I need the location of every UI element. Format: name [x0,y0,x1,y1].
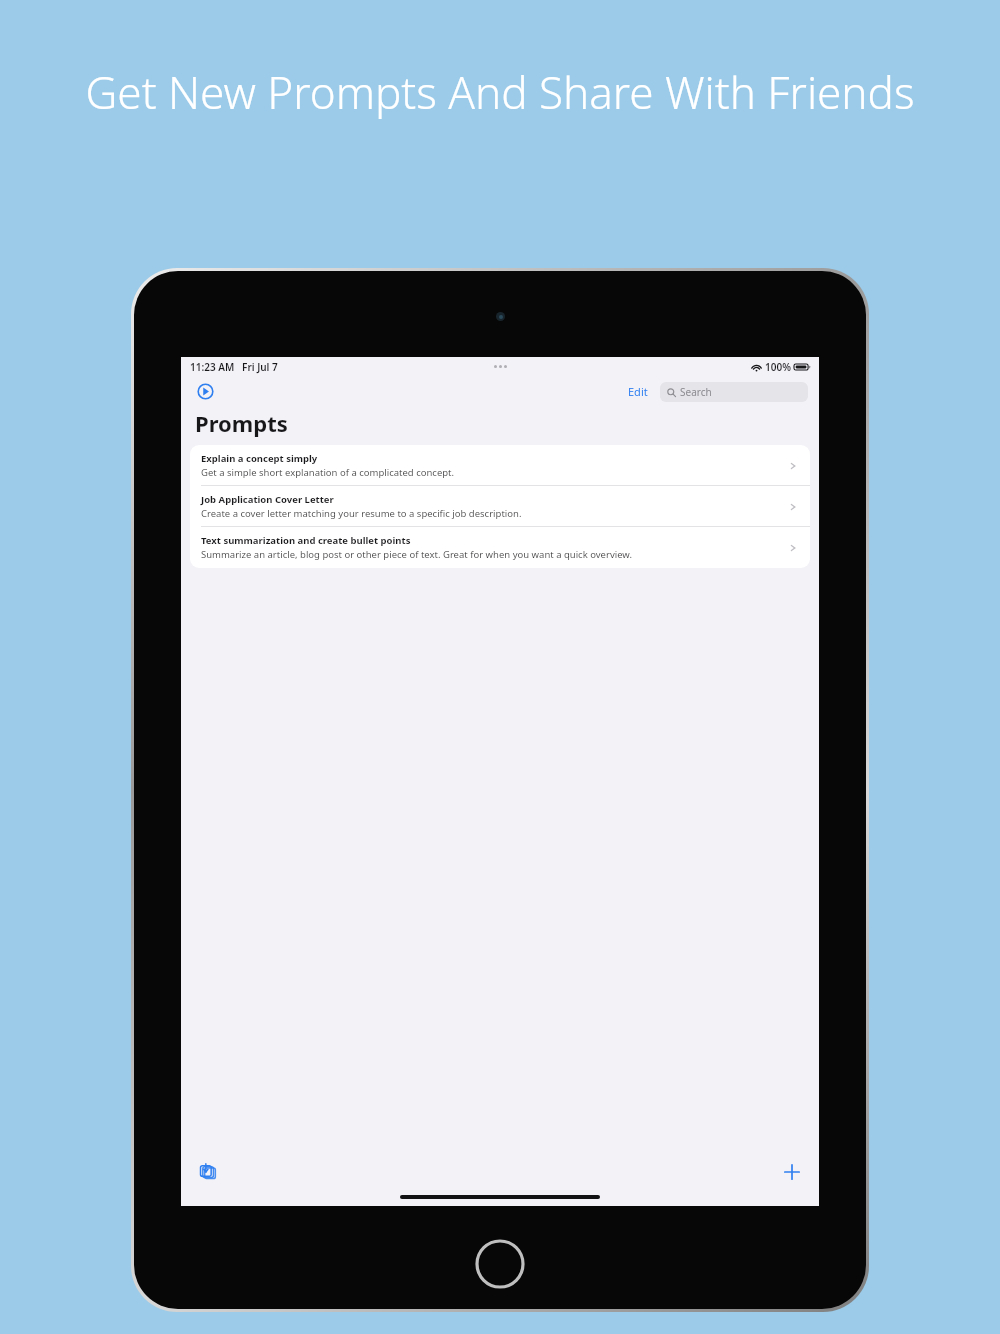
staticText: Create a cover letter matching your resu… [201,507,522,520]
staticText: Explain a concept simply [201,452,318,465]
staticText: Job Application Cover Letter [201,493,334,506]
button[interactable]: Search [660,382,808,402]
staticText: Text summarization and create bullet poi… [201,534,411,547]
button[interactable]: Run prompt [194,380,216,402]
staticText: Get New Prompts And Share With Friends [85,62,915,122]
staticText: Prompts [195,408,288,438]
button[interactable]: Edit [623,381,653,402]
button[interactable]: Job Application Cover Letter [190,486,810,527]
button[interactable]: Add prompt [779,1159,805,1185]
staticText: Search [680,385,712,399]
staticText: 11:23 AM [190,360,235,374]
staticText: Edit [628,384,648,399]
button[interactable]: Text summarization and create bullet poi… [190,527,810,568]
staticText: Summarize an article, blog post or other… [201,548,632,561]
staticText: 100% [765,360,791,374]
staticText: Fri Jul 7 [242,360,278,374]
staticText: Get a simple short explanation of a comp… [201,466,455,479]
button[interactable]: Import prompts [195,1159,221,1185]
button[interactable]: Explain a concept simply [190,445,810,486]
